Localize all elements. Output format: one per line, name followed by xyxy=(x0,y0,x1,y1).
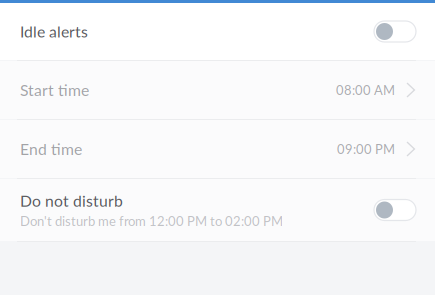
button[interactable]: Start time xyxy=(0,61,435,119)
button[interactable]: Do not disturb xyxy=(0,179,435,241)
staticText: Do not disturb xyxy=(20,191,123,210)
staticText: 08:00 AM xyxy=(336,82,395,98)
staticText: 09:00 PM xyxy=(337,141,395,157)
button[interactable]: End time xyxy=(0,120,435,178)
staticText: End time xyxy=(20,140,82,158)
staticText: Idle alerts xyxy=(20,22,88,41)
staticText: Don't disturb me from 12:00 PM to 02:00 … xyxy=(20,213,283,229)
button[interactable]: Idle alerts xyxy=(0,3,435,60)
staticText: Start time xyxy=(20,81,89,99)
